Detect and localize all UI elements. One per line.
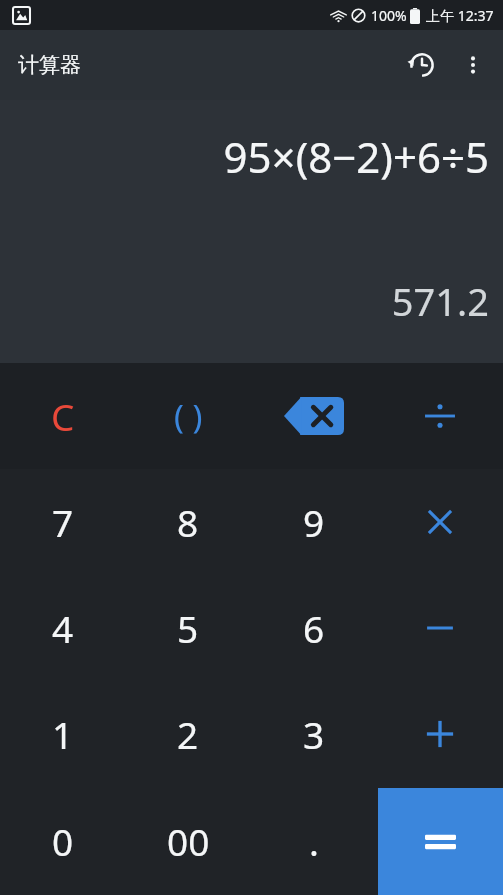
button[interactable]: 00: [125, 787, 251, 895]
button[interactable]: .: [251, 787, 377, 895]
staticText: 100%: [371, 6, 407, 25]
staticText: 2: [177, 709, 199, 759]
staticText: 00: [167, 816, 210, 866]
staticText: 计算器: [18, 52, 81, 78]
button[interactable]: 2: [125, 681, 251, 787]
button[interactable]: C: [0, 363, 125, 469]
button[interactable]: 6: [251, 575, 377, 681]
staticText: 上午 12:37: [426, 6, 494, 25]
staticText: 7: [52, 497, 74, 547]
button[interactable]: Minus: [377, 575, 503, 681]
staticText: 5: [177, 603, 199, 653]
staticText: 95×(8−2)+6÷5: [14, 128, 489, 185]
staticText: C: [51, 391, 75, 441]
button[interactable]: 4: [0, 575, 125, 681]
staticText: 9: [303, 497, 325, 547]
staticText: 6: [303, 603, 325, 653]
button[interactable]: Divide: [377, 363, 503, 469]
button[interactable]: 0: [0, 787, 125, 895]
staticText: 1: [52, 709, 74, 759]
staticText: 571.2: [14, 275, 489, 327]
button[interactable]: 5: [125, 575, 251, 681]
button[interactable]: Backspace: [251, 363, 377, 469]
button[interactable]: ( ): [125, 363, 251, 469]
button[interactable]: Plus: [377, 681, 503, 787]
button[interactable]: Equals: [378, 788, 503, 895]
button[interactable]: 7: [0, 469, 125, 575]
staticText: ( ): [174, 394, 203, 439]
staticText: .: [309, 816, 319, 866]
button[interactable]: History: [395, 38, 449, 92]
staticText: 0: [52, 816, 74, 866]
button[interactable]: Multiply: [377, 469, 503, 575]
button[interactable]: 8: [125, 469, 251, 575]
staticText: 4: [52, 603, 74, 653]
button[interactable]: 9: [251, 469, 377, 575]
staticText: 8: [177, 497, 199, 547]
staticText: 3: [303, 709, 325, 759]
button[interactable]: More options: [449, 41, 497, 89]
button[interactable]: 3: [251, 681, 377, 787]
button[interactable]: 1: [0, 681, 125, 787]
